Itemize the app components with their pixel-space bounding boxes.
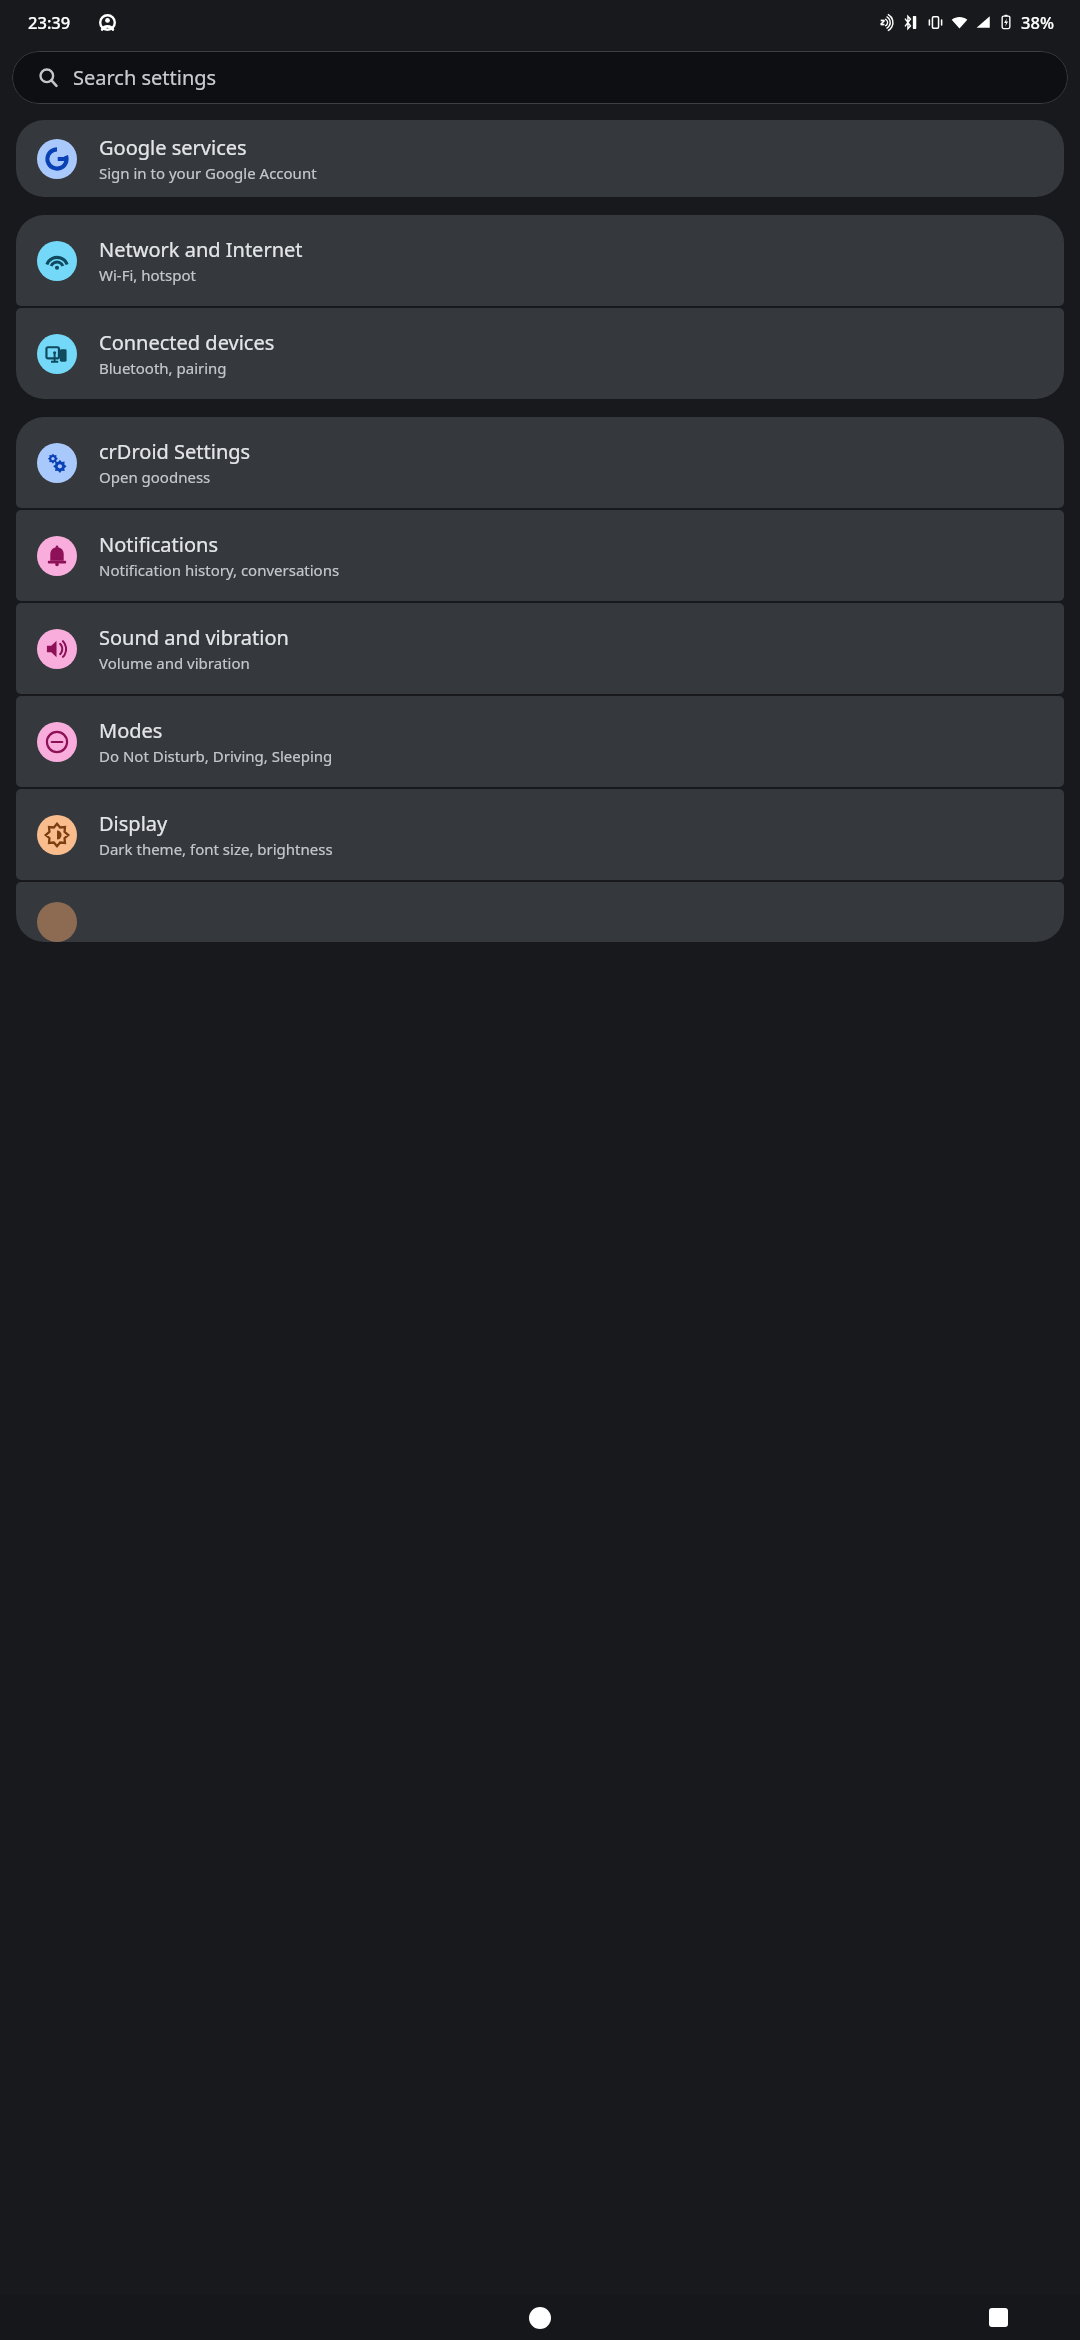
button[interactable]: Display [16, 789, 1064, 880]
button[interactable]: Sound and vibration [16, 603, 1064, 694]
staticText: Modes [99, 717, 163, 744]
staticText: Dark theme, font size, brightness [99, 839, 333, 859]
staticText: crDroid Settings [99, 438, 251, 465]
button[interactable]: Home [529, 2307, 551, 2329]
staticText: Notifications [99, 531, 218, 558]
staticText: Wi-Fi, hotspot [99, 265, 196, 285]
staticText: Sound and vibration [99, 624, 289, 651]
staticText: Google services [99, 134, 247, 161]
staticText: 23:39 [28, 11, 71, 33]
staticText: Network and Internet [99, 236, 303, 263]
staticText: Bluetooth, pairing [99, 358, 227, 378]
staticText: Search settings [73, 64, 217, 91]
staticText: Volume and vibration [99, 653, 250, 673]
button[interactable]: crDroid Settings [16, 417, 1064, 508]
staticText: Sign in to your Google Account [99, 163, 317, 183]
staticText: 38% [1021, 11, 1054, 33]
button[interactable]: Google services [16, 120, 1064, 197]
staticText: Display [99, 810, 168, 837]
button[interactable]: Modes [16, 696, 1064, 787]
staticText: Notification history, conversations [99, 560, 340, 580]
button[interactable]: Search settings [12, 51, 1068, 104]
button[interactable]: Network and Internet [16, 215, 1064, 306]
staticText: Connected devices [99, 329, 275, 356]
button[interactable] [16, 882, 1064, 942]
staticText: Do Not Disturb, Driving, Sleeping [99, 746, 333, 766]
button[interactable]: Notifications [16, 510, 1064, 601]
button[interactable]: Recents [989, 2308, 1008, 2327]
button[interactable]: Connected devices [16, 308, 1064, 399]
staticText: Open goodness [99, 467, 211, 487]
